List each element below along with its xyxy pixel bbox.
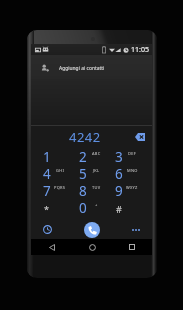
button[interactable]: 1 [37,148,74,165]
staticText: + [95,202,98,207]
staticText: 3 [115,148,123,165]
button[interactable]: 9 [110,182,146,199]
button[interactable]: Backspace [132,129,148,145]
staticText: 8 [79,182,87,199]
button[interactable]: 4 [37,165,74,182]
staticText: MNO [127,168,138,173]
staticText: 1 [43,148,51,165]
staticText: 4242 [69,128,101,146]
button[interactable]: Call [84,222,100,238]
button[interactable]: 6 [110,165,146,182]
staticText: 7 [43,182,51,199]
staticText: PQRS [54,185,66,190]
staticText: # [116,203,122,215]
button[interactable]: More options [110,217,146,242]
staticText: 0 [79,199,87,216]
staticText: TUV [92,185,101,190]
button[interactable]: 7 [37,182,74,199]
staticText: ABC [92,151,101,156]
button[interactable]: Recent calls [37,217,74,242]
button[interactable]: 5 [74,165,110,182]
button[interactable]: 3 [110,148,146,165]
button[interactable]: Back [31,239,72,255]
staticText: 4 [43,165,51,182]
button[interactable]: * [37,199,74,216]
staticText: GHI [56,168,64,173]
staticText: 9 [115,182,123,199]
button[interactable]: 8 [74,182,110,199]
button[interactable]: 2 [74,148,110,165]
staticText: 11:05 [131,45,149,55]
staticText: WXYZ [126,185,138,190]
staticText: JKL [93,168,100,173]
button[interactable]: 0 [74,199,110,216]
button[interactable]: Home [72,239,112,255]
staticText: * [44,203,49,215]
staticText: Aggiungi ai contatti [59,65,105,72]
button[interactable]: Recents [112,239,152,255]
staticText: DEF [128,151,136,156]
button[interactable]: Aggiungi ai contatti [31,55,152,79]
staticText: 5 [79,165,87,182]
button[interactable]: # [110,199,146,216]
staticText: 6 [115,165,123,182]
staticText: 2 [79,148,87,165]
